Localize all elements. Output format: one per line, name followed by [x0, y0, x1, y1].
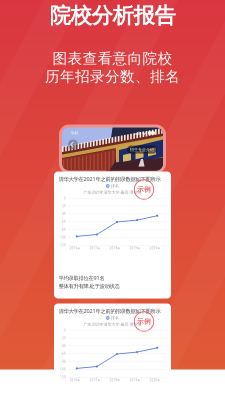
staticText: 2016年 [69, 378, 80, 382]
staticText: 广东2021年清华大学·最高·理科类 [83, 321, 141, 327]
staticText: 示例 [137, 185, 151, 194]
staticText: 2019年 [129, 246, 140, 250]
staticText: 示例 [137, 317, 151, 326]
staticText: 广东2021年清华大学·最高·理科类 [83, 189, 141, 195]
staticText: 60 [62, 352, 66, 355]
staticText: 排名 [111, 315, 119, 320]
staticText: 2019年 [129, 378, 140, 382]
staticText: 20 [62, 204, 66, 208]
staticText: 40 [62, 212, 66, 216]
staticText: 招生专业介绍 [130, 147, 154, 152]
staticText: 2018年 [109, 246, 120, 250]
staticText: 整体有升有降,处于波动状态 [58, 282, 119, 290]
staticText: 2018年 [109, 378, 120, 382]
staticText: 2017年 [89, 246, 100, 250]
staticText: 100 [60, 368, 66, 371]
staticText: 院校分析报告 [49, 2, 175, 29]
staticText: 80 [62, 228, 66, 231]
staticText: 历年招录分数、排名 [45, 67, 180, 85]
staticText: 2017年 [89, 378, 100, 382]
staticText: 0 [64, 329, 66, 332]
staticText: 清华大学在2021年之前的招录数据如下图所示 [58, 307, 160, 315]
staticText: 120 [60, 375, 66, 379]
staticText: 2020年 [149, 246, 160, 250]
staticText: 0 [64, 197, 66, 200]
staticText: 清华大学在2021年之前的招录数据如下图所示 [58, 175, 160, 183]
staticText: 2020年 [149, 378, 160, 382]
staticText: 80 [62, 360, 66, 363]
staticText: 40 [62, 344, 66, 348]
staticText: 60 [62, 220, 66, 223]
staticText: 平均录取排位在91名 [58, 274, 104, 282]
staticText: 9:41 [71, 130, 78, 136]
staticText: 100 [60, 236, 66, 239]
staticText: 120 [60, 243, 66, 247]
staticText: 20 [62, 336, 66, 340]
staticText: 排名 [111, 183, 119, 188]
staticText: 图表查看意向院校 [52, 49, 172, 67]
staticText: 2016年 [69, 246, 80, 250]
